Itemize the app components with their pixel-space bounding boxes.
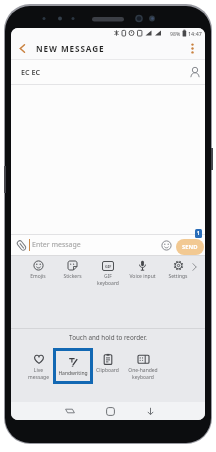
button[interactable]: EC EC [11,60,205,84]
staticText: Enter message [32,240,81,250]
button[interactable] [135,402,165,420]
button[interactable] [11,38,33,59]
staticText: Stickers [63,273,82,280]
button[interactable]: Handwriting [58,356,88,377]
button[interactable]: Handwriting [53,348,93,384]
staticText: 1 [197,230,200,237]
staticText: GIF [105,264,112,269]
staticText: Voice input [129,273,156,280]
button[interactable] [55,402,85,420]
button[interactable]: SEND [176,239,204,255]
button[interactable]: Voice input [129,260,156,280]
button[interactable] [161,240,172,251]
staticText: GIF keyboard [97,273,119,286]
staticText: SEND [182,243,198,251]
button[interactable]: GIF [97,260,119,286]
button[interactable]: Emojis [30,260,46,280]
button[interactable] [95,402,125,420]
button[interactable]: Settings [168,260,188,280]
staticText: Live message [28,367,49,380]
button[interactable]: Stickers [63,260,82,280]
button[interactable] [16,239,27,252]
button[interactable]: Clipboard [96,353,119,374]
staticText: Handwriting [58,370,88,377]
staticText: EC EC [21,67,41,77]
staticText: 14:47 [188,30,202,37]
staticText: NEW MESSAGE [36,43,105,54]
staticText: Emojis [30,273,46,280]
staticText: Clipboard [96,367,119,374]
staticText: Settings [168,273,188,280]
button[interactable]: One-handed keyboard [128,353,158,380]
button[interactable]: Live message [28,353,49,380]
button[interactable] [190,66,200,78]
staticText: One-handed keyboard [128,367,158,380]
staticText: 98% [170,30,181,37]
staticText: Touch and hold to reorder. [11,333,205,342]
button[interactable] [179,38,205,59]
